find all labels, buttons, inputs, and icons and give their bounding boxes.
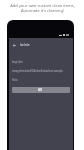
staticText: Image Cache [12, 60, 23, 64]
staticText: SAVE [38, 88, 42, 92]
staticText: Custom Clean Item [20, 43, 40, 47]
staticText: Add your own custom clean items, [10, 3, 75, 8]
staticText: Automate it's cleaning! [21, 8, 64, 13]
button[interactable]: SAVE [12, 87, 70, 93]
staticText: storage/emulated/0/Android/data/com.exam… [12, 69, 63, 73]
staticText: Photos [12, 78, 18, 82]
button[interactable]: Back [11, 42, 18, 49]
